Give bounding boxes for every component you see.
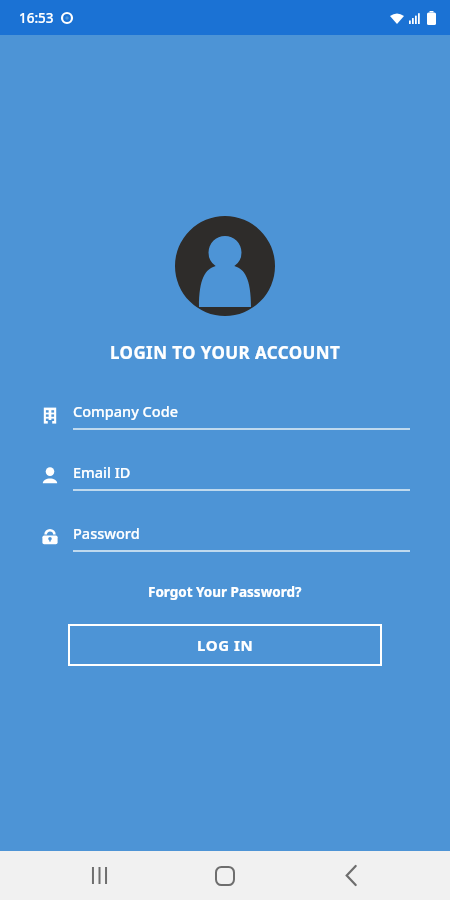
button[interactable]: Home bbox=[198, 851, 252, 900]
staticText: LOGIN TO YOUR ACCOUNT bbox=[110, 341, 341, 364]
staticText: LOG IN bbox=[197, 635, 254, 655]
button[interactable]: Recent apps bbox=[72, 851, 126, 900]
staticText: Company Code bbox=[73, 401, 178, 421]
button[interactable]: Company Code bbox=[40, 395, 410, 435]
button[interactable]: Email ID bbox=[40, 456, 410, 496]
staticText: Password bbox=[73, 523, 140, 543]
staticText: 16:53 bbox=[19, 9, 54, 27]
button[interactable]: Forgot Your Password? bbox=[136, 579, 314, 605]
button[interactable]: Password bbox=[40, 517, 410, 557]
staticText: Forgot Your Password? bbox=[148, 583, 302, 601]
button[interactable]: LOG IN bbox=[68, 624, 382, 666]
button[interactable]: Back bbox=[324, 851, 378, 900]
staticText: Email ID bbox=[73, 462, 131, 482]
